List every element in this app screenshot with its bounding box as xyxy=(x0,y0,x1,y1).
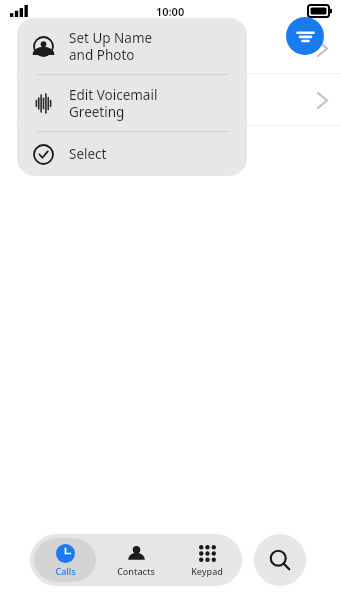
button[interactable] xyxy=(0,74,341,126)
staticText: Contacts xyxy=(117,565,155,577)
button[interactable]: Search xyxy=(254,534,306,586)
staticText: Edit Voicemail Greeting xyxy=(69,86,158,121)
button[interactable]: Select xyxy=(17,132,247,176)
button[interactable] xyxy=(0,22,341,74)
staticText: Keypad xyxy=(191,565,223,577)
staticText: Select xyxy=(69,145,107,163)
staticText: Set Up Name and Photo xyxy=(69,29,153,64)
button[interactable]: Keypad xyxy=(175,538,238,582)
staticText: 10:00 xyxy=(156,4,185,19)
button[interactable]: Edit Voicemail Greeting xyxy=(17,75,247,131)
button[interactable]: Set Up Name and Photo xyxy=(17,18,247,74)
button[interactable]: Sort and filter xyxy=(286,17,324,55)
button[interactable]: Contacts xyxy=(104,538,167,582)
staticText: Calls xyxy=(55,565,76,577)
button[interactable]: Calls xyxy=(34,538,96,582)
